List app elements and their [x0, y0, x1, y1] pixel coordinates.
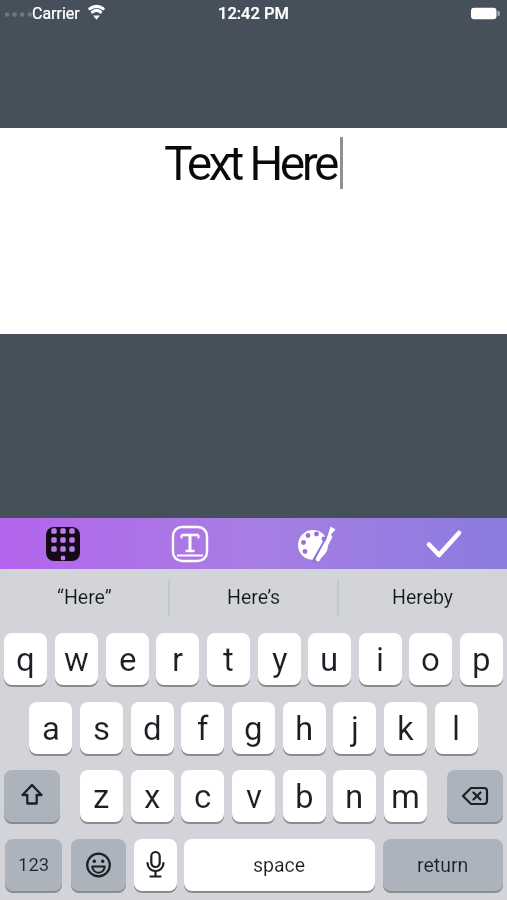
- staticText: x: [144, 777, 161, 816]
- button[interactable]: t: [207, 633, 250, 685]
- staticText: o: [421, 640, 440, 679]
- staticText: return: [417, 854, 469, 877]
- staticText: 12:42 PM: [218, 4, 289, 23]
- staticText: Hereby: [392, 586, 454, 609]
- button[interactable]: space: [184, 839, 375, 891]
- staticText: c: [194, 777, 212, 816]
- button[interactable]: “Here”: [0, 569, 169, 626]
- staticText: t: [223, 640, 234, 679]
- staticText: m: [391, 777, 420, 816]
- button[interactable]: o: [409, 633, 452, 685]
- staticText: v: [246, 777, 262, 816]
- button[interactable]: h: [283, 702, 326, 754]
- staticText: “Here”: [57, 586, 112, 609]
- button[interactable]: f: [181, 702, 224, 754]
- button[interactable]: x: [131, 770, 174, 822]
- button[interactable]: u: [308, 633, 351, 685]
- button[interactable]: q: [4, 633, 47, 685]
- button[interactable]: k: [384, 702, 427, 754]
- button[interactable]: Hereby: [338, 569, 507, 626]
- button[interactable]: s: [80, 702, 123, 754]
- staticText: w: [64, 640, 89, 679]
- button[interactable]: return: [383, 839, 503, 891]
- button[interactable]: 123: [5, 839, 62, 891]
- staticText: g: [244, 709, 263, 748]
- staticText: s: [93, 709, 111, 748]
- staticText: k: [397, 709, 414, 748]
- staticText: u: [320, 640, 339, 679]
- staticText: n: [345, 777, 364, 816]
- staticText: j: [351, 709, 359, 748]
- staticText: l: [452, 709, 461, 748]
- button[interactable]: [380, 518, 507, 569]
- staticText: z: [93, 777, 110, 816]
- staticText: r: [172, 640, 184, 679]
- button[interactable]: w: [55, 633, 98, 685]
- button[interactable]: [126, 518, 253, 569]
- staticText: Text Here: [164, 135, 336, 191]
- button[interactable]: g: [232, 702, 275, 754]
- button[interactable]: d: [131, 702, 174, 754]
- staticText: i: [376, 640, 385, 679]
- staticText: Carrier: [32, 4, 80, 23]
- button[interactable]: j: [333, 702, 376, 754]
- button[interactable]: [0, 518, 126, 569]
- button[interactable]: l: [435, 702, 478, 754]
- button[interactable]: m: [384, 770, 427, 822]
- button[interactable]: n: [333, 770, 376, 822]
- button[interactable]: [134, 839, 177, 891]
- button[interactable]: a: [29, 702, 72, 754]
- button[interactable]: [71, 839, 126, 891]
- button[interactable]: [253, 518, 380, 569]
- staticText: p: [472, 640, 491, 679]
- button[interactable]: Here’s: [169, 569, 338, 626]
- staticText: space: [253, 854, 306, 877]
- staticText: d: [143, 709, 162, 748]
- button[interactable]: z: [80, 770, 123, 822]
- button[interactable]: b: [283, 770, 326, 822]
- button[interactable]: [4, 770, 60, 822]
- button[interactable]: r: [156, 633, 199, 685]
- staticText: b: [295, 777, 314, 816]
- button[interactable]: y: [258, 633, 301, 685]
- staticText: q: [16, 640, 35, 679]
- button[interactable]: c: [181, 770, 224, 822]
- button[interactable]: i: [359, 633, 402, 685]
- staticText: 123: [18, 854, 50, 876]
- staticText: Here’s: [227, 586, 281, 609]
- staticText: f: [197, 709, 209, 748]
- staticText: e: [119, 640, 137, 679]
- staticText: a: [42, 709, 60, 748]
- staticText: h: [295, 709, 314, 748]
- button[interactable]: v: [232, 770, 275, 822]
- button[interactable]: e: [106, 633, 149, 685]
- staticText: y: [272, 640, 288, 679]
- button[interactable]: [447, 770, 503, 822]
- button[interactable]: p: [460, 633, 503, 685]
